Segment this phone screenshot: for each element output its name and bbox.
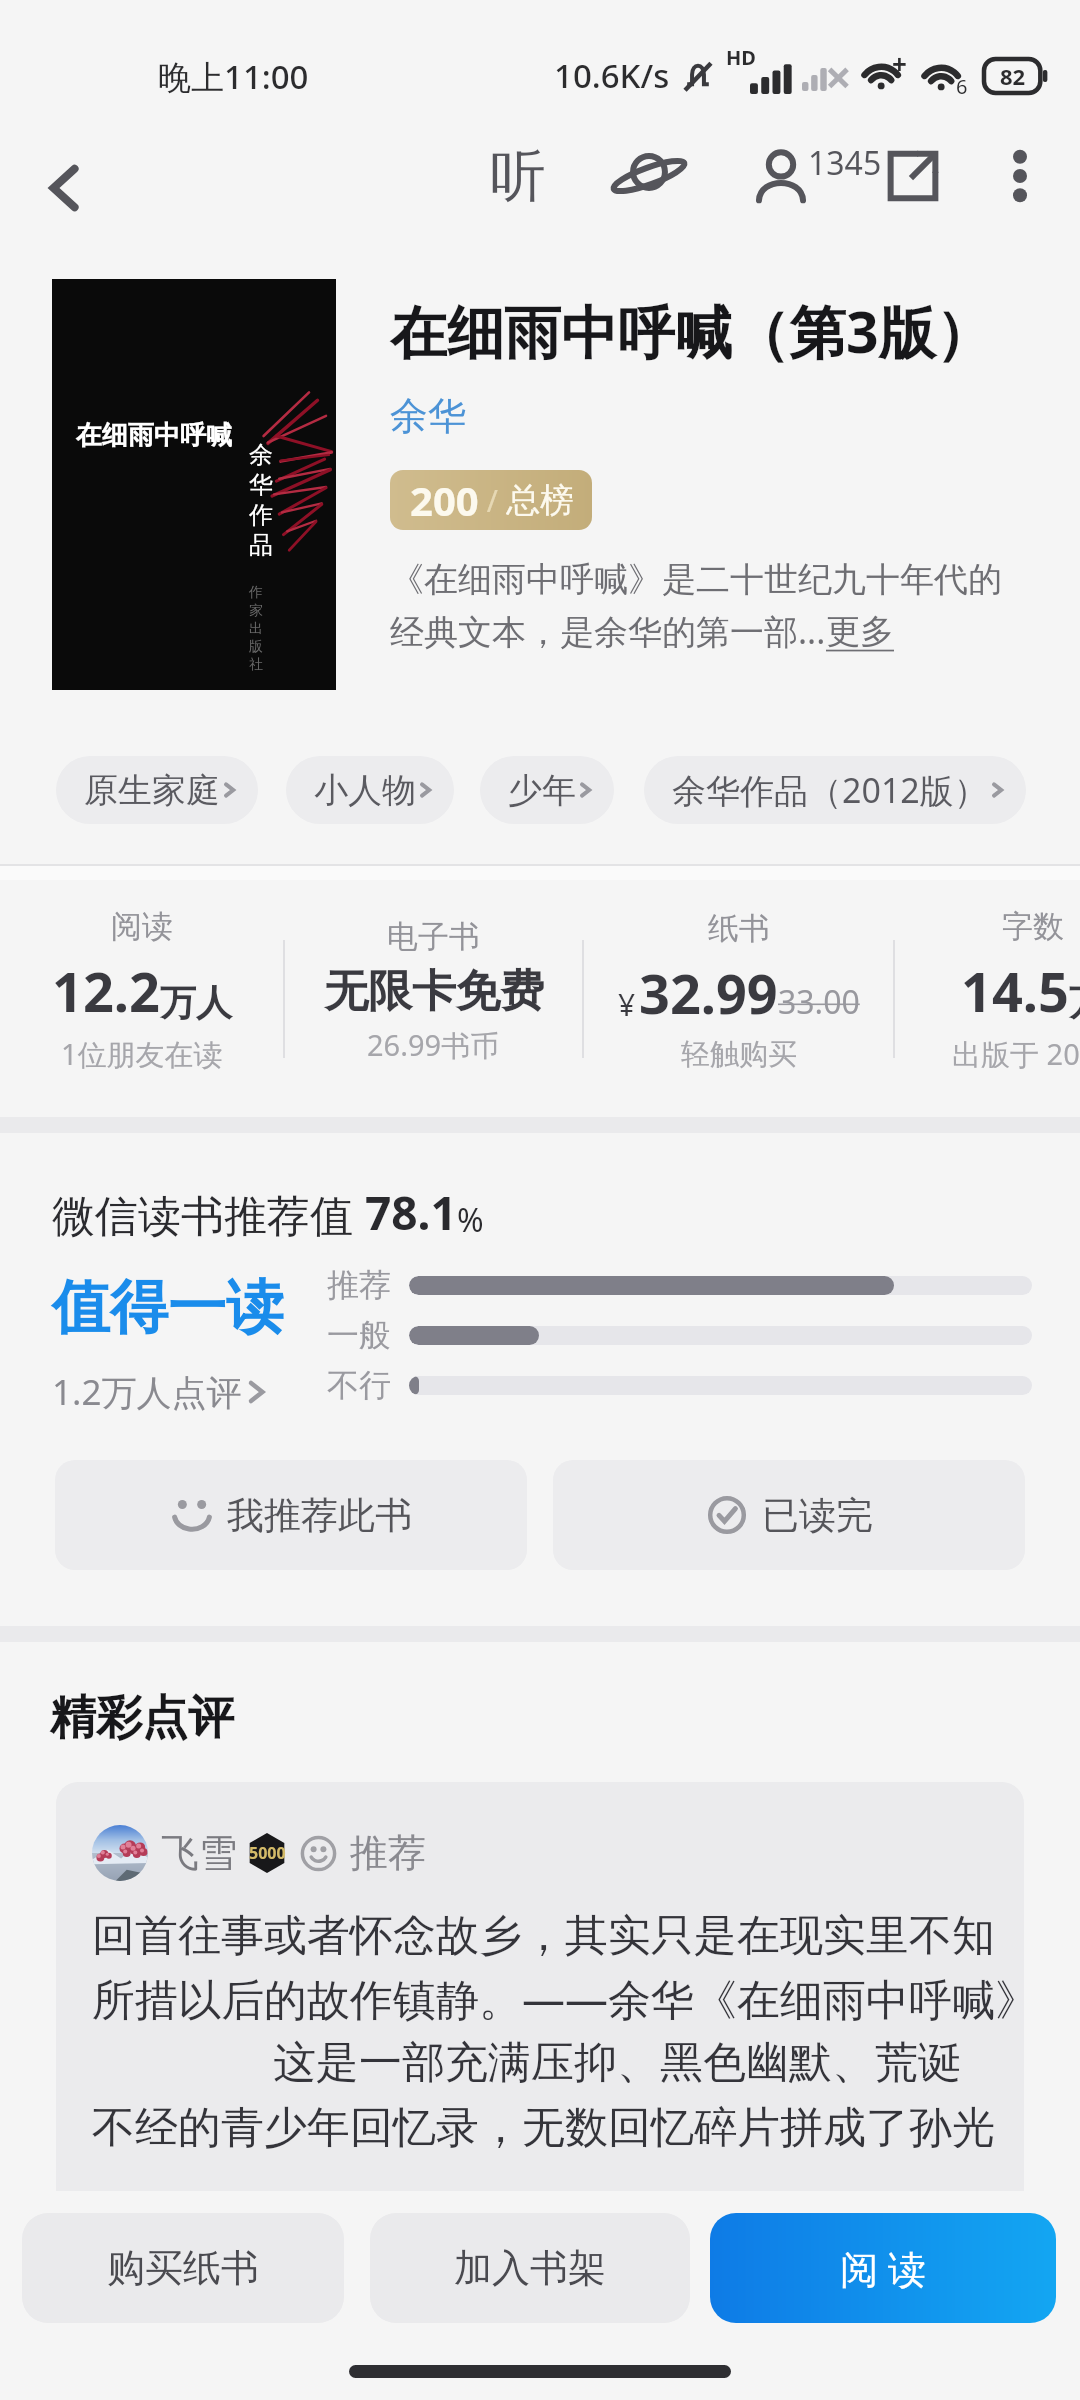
staticText: 不经的青少年回忆录，无数回忆碎片拼成了孙光 (92, 2101, 995, 2155)
staticText: 华 (249, 470, 273, 500)
button[interactable]: 纸书 (584, 880, 893, 1117)
button[interactable]: 字数 (940, 880, 1080, 1117)
staticText: 电子书 (387, 917, 480, 956)
staticText: 经典文本，是余华的第一部... (390, 608, 826, 654)
staticText: 小人物 (314, 769, 416, 812)
button[interactable]: 原生家庭 (56, 756, 258, 824)
staticText: ¥ (618, 984, 636, 1025)
staticText: 已读完 (762, 1492, 873, 1539)
staticText: 总榜 (506, 479, 574, 522)
button[interactable]: 已读完 (553, 1460, 1025, 1570)
button[interactable]: 购买纸书 (22, 2213, 344, 2323)
button[interactable]: Discover (603, 131, 695, 221)
staticText: 出 (249, 620, 263, 638)
staticText: / (479, 480, 506, 521)
staticText: 推荐 (327, 1265, 391, 1305)
staticText: 这是一部充满压抑、黑色幽默、荒诞 (273, 2036, 961, 2090)
staticText: 余 (249, 440, 273, 470)
button[interactable]: Listen (472, 131, 564, 221)
staticText: 在细雨中呼喊 (76, 419, 232, 452)
staticText: 品 (249, 530, 273, 560)
button[interactable]: 加入书架 (370, 2213, 690, 2323)
staticText: 家 (249, 602, 263, 620)
staticText: 回首往事或者怀念故乡，其实只是在现实里不知 (92, 1909, 995, 1963)
button[interactable]: 飞雪 (56, 1782, 1024, 2275)
staticText: 原生家庭 (84, 769, 220, 812)
button[interactable]: 余华 (390, 392, 466, 440)
staticText: 12.2 (52, 954, 160, 1028)
button[interactable]: Back (22, 145, 108, 231)
staticText: 纸书 (708, 909, 770, 948)
staticText: 在细雨中呼喊（第3版） (390, 292, 993, 370)
staticText: 轻触购买 (681, 1036, 797, 1073)
staticText: 10.6K/s (554, 53, 670, 98)
button[interactable]: 少年 (480, 756, 614, 824)
staticText: 1.2万人点评 (52, 1368, 242, 1416)
staticText: 阅 读 (840, 2242, 926, 2294)
staticText: 社 (249, 656, 263, 674)
staticText: 5000 (249, 1842, 286, 1864)
staticText: 微信读书推荐值 (52, 1185, 365, 1244)
staticText: 所措以后的故作镇静。——余华《在细雨中呼喊》 (92, 1969, 1020, 2028)
staticText: 字数 (1002, 907, 1064, 946)
staticText: 值得一读 (52, 1271, 284, 1344)
staticText: 78.1 (365, 1181, 457, 1244)
staticText: 不行 (327, 1365, 391, 1405)
staticText: 余华作品（2012版） (672, 767, 988, 813)
staticText: 晚上11:00 (158, 54, 309, 99)
staticText: 听 (490, 141, 546, 212)
staticText: % (457, 1198, 484, 1242)
button[interactable]: Share (868, 131, 958, 221)
staticText: 我推荐此书 (227, 1492, 412, 1539)
staticText: 14.5 (961, 954, 1069, 1028)
staticText: 加入书架 (454, 2244, 606, 2292)
button[interactable]: Book cover (52, 279, 336, 690)
staticText: 1位朋友在读 (61, 1034, 223, 1074)
button[interactable]: 阅 读 (710, 2213, 1056, 2323)
button[interactable]: Readers 1345 (740, 131, 872, 221)
staticText: 推荐 (350, 1829, 426, 1877)
staticText: 阅读 (111, 907, 173, 946)
button[interactable]: 余华作品（2012版） (644, 756, 1026, 824)
staticText: 200 (410, 473, 479, 527)
staticText: + (892, 46, 907, 81)
button[interactable]: 小人物 (286, 756, 454, 824)
staticText: 26.99书币 (367, 1025, 500, 1065)
staticText: 无限卡免费 (324, 964, 544, 1019)
staticText: 作 (249, 500, 273, 530)
staticText: 33.00 (778, 980, 860, 1024)
staticText: 万人 (160, 980, 232, 1025)
button[interactable]: 值得一读 (52, 1271, 332, 1416)
button[interactable]: More options (976, 131, 1064, 221)
staticText: 一般 (327, 1315, 391, 1355)
button[interactable]: 阅读 (0, 880, 283, 1117)
staticText: 少年 (508, 769, 576, 812)
staticText: 1345 (808, 141, 882, 185)
button[interactable]: 我推荐此书 (55, 1460, 527, 1570)
button[interactable]: 200 (390, 470, 592, 530)
button[interactable]: 电子书 (285, 880, 582, 1117)
staticText: 万 (1069, 980, 1080, 1025)
staticText: 出版于 2012 (952, 1034, 1080, 1074)
staticText: 飞雪 (161, 1829, 237, 1877)
staticText: 6 (956, 73, 968, 100)
staticText: 《在细雨中呼喊》是二十世纪九十年代的 (390, 558, 1002, 601)
button[interactable]: 更多 (826, 610, 894, 653)
staticText: 精彩点评 (50, 1689, 234, 1747)
staticText: 作 (249, 584, 263, 602)
staticText: 82 (1000, 61, 1026, 91)
staticText: 32.99 (639, 956, 778, 1030)
staticText: 版 (249, 638, 263, 656)
staticText: HD (726, 44, 756, 71)
staticText: 购买纸书 (107, 2244, 259, 2292)
